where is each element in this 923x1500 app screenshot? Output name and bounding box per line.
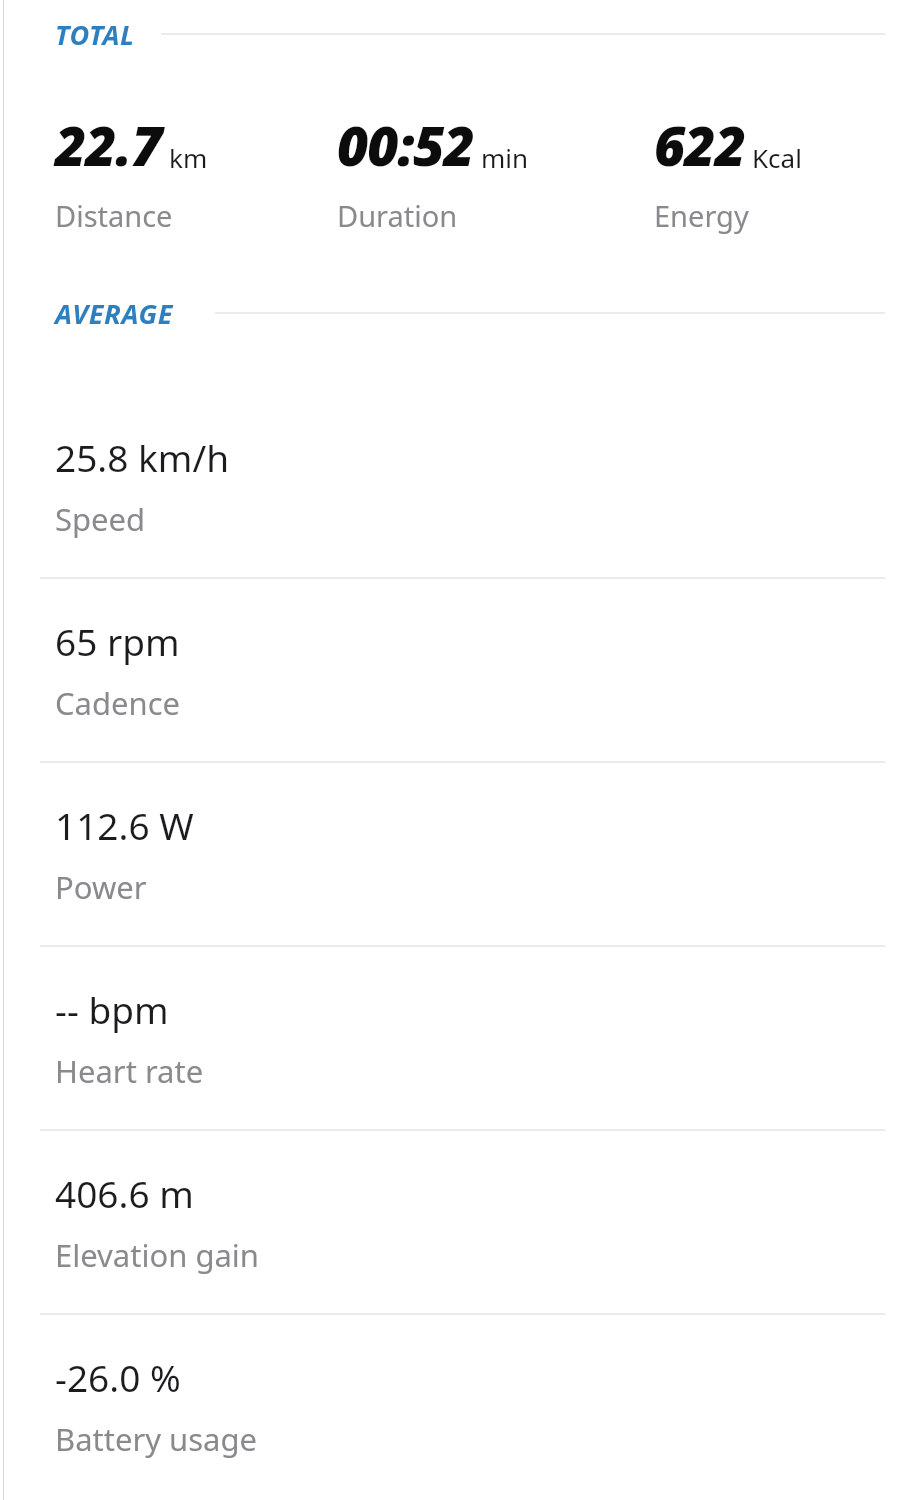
button[interactable]: 406.6 m	[0, 1131, 923, 1313]
staticText: Battery usage	[55, 1418, 258, 1460]
staticText: Heart rate	[55, 1050, 204, 1092]
staticText: Duration	[337, 196, 458, 235]
staticText: Energy	[654, 196, 749, 235]
staticText: 622	[654, 108, 745, 182]
staticText: 112.6 W	[55, 800, 194, 850]
staticText: min	[481, 140, 529, 175]
staticText: AVERAGE	[55, 295, 173, 332]
staticText: 65 rpm	[55, 616, 180, 666]
staticText: 25.8 km/h	[55, 432, 230, 482]
staticText: Distance	[55, 196, 173, 235]
button[interactable]: 65 rpm	[0, 579, 923, 761]
staticText: TOTAL	[55, 16, 135, 53]
button[interactable]: 00:52	[337, 108, 654, 235]
button[interactable]: 25.8 km/h	[0, 395, 923, 577]
button[interactable]: -26.0 %	[0, 1315, 923, 1497]
staticText: Speed	[55, 498, 146, 540]
staticText: Elevation gain	[55, 1234, 260, 1276]
button[interactable]: 112.6 W	[0, 763, 923, 945]
button[interactable]: 622	[654, 108, 903, 235]
staticText: -26.0 %	[55, 1352, 181, 1402]
button[interactable]: 22.7	[55, 108, 337, 235]
button[interactable]: -- bpm	[0, 947, 923, 1129]
staticText: Cadence	[55, 682, 181, 724]
staticText: Power	[55, 866, 147, 908]
staticText: 406.6 m	[55, 1168, 194, 1218]
staticText: 22.7	[55, 108, 162, 182]
staticText: km	[169, 140, 208, 175]
staticText: 00:52	[337, 108, 474, 182]
staticText: -- bpm	[55, 984, 169, 1034]
staticText: Kcal	[752, 140, 802, 175]
